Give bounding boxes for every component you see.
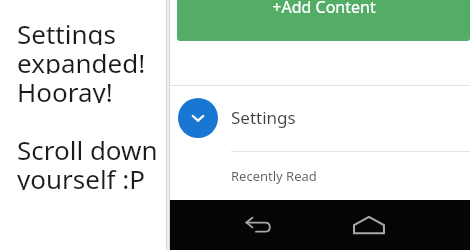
button[interactable]: Recently Read bbox=[170, 152, 470, 199]
staticText: yourself :P bbox=[17, 161, 146, 190]
button[interactable]: Home bbox=[338, 200, 400, 250]
button[interactable]: Back bbox=[228, 200, 290, 250]
staticText: Settings bbox=[231, 106, 296, 129]
button[interactable]: Collapse Settings bbox=[170, 86, 470, 151]
staticText: Hooray! bbox=[17, 74, 113, 103]
staticText: Recently Read bbox=[231, 167, 317, 185]
staticText: expanded! bbox=[17, 45, 146, 74]
button[interactable]: +Add Content bbox=[177, 0, 470, 41]
staticText: Settings bbox=[17, 16, 116, 45]
other: Collapse Settings bbox=[178, 98, 218, 138]
staticText: Scroll down bbox=[17, 132, 158, 161]
staticText: +Add Content bbox=[272, 0, 376, 18]
